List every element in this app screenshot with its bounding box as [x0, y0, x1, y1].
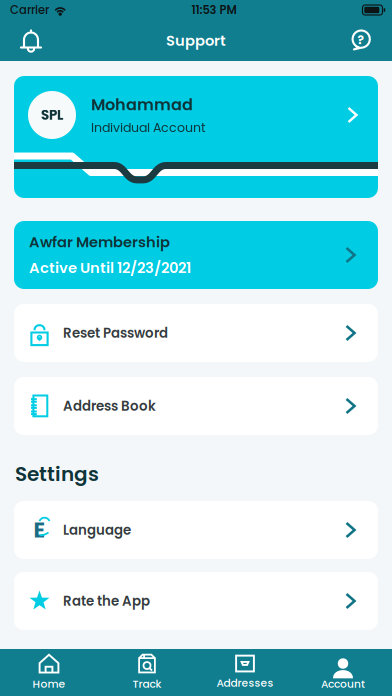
button[interactable]: Track: [98, 649, 196, 696]
button[interactable]: Addresses: [196, 649, 294, 696]
staticText: Mohammad: [91, 93, 193, 116]
staticText: Addresses: [216, 675, 273, 690]
staticText: Language: [63, 521, 131, 539]
button[interactable]: Help: [338, 20, 384, 61]
staticText: Address Book: [63, 397, 156, 415]
staticText: Rate the App: [63, 592, 150, 610]
staticText: Reset Password: [63, 324, 168, 342]
button[interactable]: E: [14, 501, 378, 559]
button[interactable]: Reset Password: [14, 304, 378, 362]
staticText: Individual Account: [91, 119, 206, 136]
staticText: Account: [321, 676, 365, 691]
button[interactable]: Awfar Membership: [14, 221, 378, 289]
staticText: Carrier: [10, 2, 49, 18]
staticText: ?: [358, 32, 364, 48]
staticText: Awfar Membership: [29, 232, 170, 252]
staticText: Support: [166, 30, 226, 51]
staticText: SPL: [41, 106, 63, 124]
button[interactable]: Address Book: [14, 377, 378, 435]
button[interactable]: Home: [0, 649, 98, 696]
staticText: 11:53 PM: [191, 2, 236, 18]
button[interactable]: Notifications: [8, 20, 54, 61]
staticText: Home: [32, 676, 65, 691]
staticText: E: [33, 515, 45, 545]
staticText: Active Until 12/23/2021: [29, 257, 191, 278]
button[interactable]: Rate the App: [14, 572, 378, 630]
staticText: Settings: [15, 460, 99, 488]
button[interactable]: Account: [294, 649, 392, 696]
staticText: Track: [132, 676, 161, 691]
button[interactable]: SPL: [14, 76, 378, 198]
